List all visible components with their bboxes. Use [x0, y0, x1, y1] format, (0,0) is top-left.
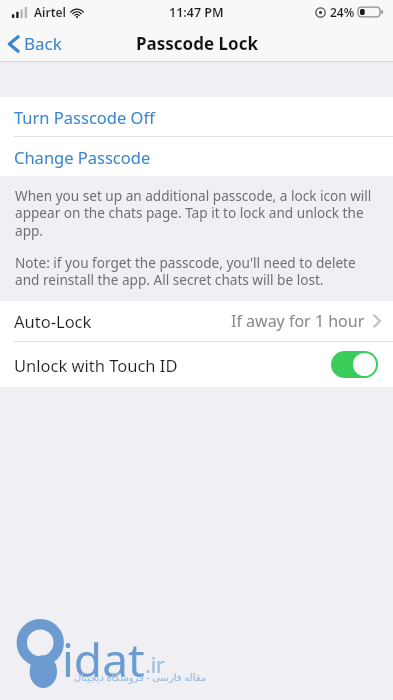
staticText: Turn Passcode Off	[14, 106, 155, 128]
button[interactable]: Auto-Lock	[0, 301, 393, 341]
button[interactable]: Unlock with Touch ID	[0, 342, 393, 387]
staticText: Passcode Lock	[136, 32, 258, 55]
staticText: مقاله فارسی - فروشگاه دیجیتال	[60, 670, 220, 684]
staticText: Unlock with Touch ID	[14, 354, 178, 376]
staticText: When you set up an additional passcode, …	[15, 186, 376, 240]
staticText: Note: if you forget the passcode, you'll…	[15, 253, 376, 289]
staticText: Back	[24, 32, 62, 55]
button[interactable]: Unlock with Touch ID toggle, on	[331, 351, 378, 378]
staticText: 11:47 PM	[169, 4, 224, 21]
staticText: Airtel	[34, 4, 66, 20]
staticText: idat	[62, 628, 145, 691]
staticText: Auto-Lock	[14, 310, 92, 332]
staticText: If away for 1 hour	[231, 310, 365, 332]
button[interactable]: Change Passcode	[0, 137, 393, 176]
button[interactable]: Turn Passcode Off	[0, 97, 393, 136]
staticText: Change Passcode	[14, 146, 151, 168]
staticText: .ir	[145, 651, 165, 680]
staticText: 24%	[330, 4, 355, 20]
button[interactable]: Back	[0, 28, 72, 59]
